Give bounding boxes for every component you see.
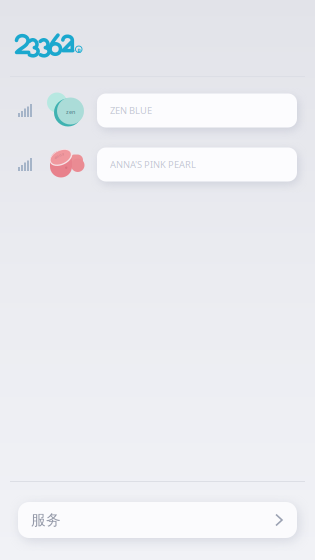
button[interactable]: 服务	[0, 502, 315, 538]
staticText: ANNA'S PINK PEARL	[110, 158, 196, 171]
staticText: 服务	[31, 511, 61, 529]
staticText: anna	[54, 153, 64, 158]
staticText: ZEN BLUE	[110, 104, 152, 117]
staticText: zen	[66, 108, 75, 116]
staticText: R	[77, 47, 80, 54]
button[interactable]: ZEN BLUE	[0, 84, 315, 137]
button[interactable]: ANNA'S PINK PEARL	[0, 138, 315, 191]
